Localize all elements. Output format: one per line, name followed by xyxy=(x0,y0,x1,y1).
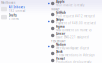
staticText: Production deploy ready xyxy=(56,60,91,63)
staticText: 182 unread xyxy=(8,9,25,13)
staticText: Stripe xyxy=(56,18,64,21)
staticText: Apple xyxy=(56,0,65,3)
staticText: New comment on Home v3 xyxy=(56,28,92,32)
staticText: GitHub xyxy=(56,11,66,14)
staticText: Mailboxes xyxy=(1,1,15,4)
staticText: YESTERDAY xyxy=(51,39,66,43)
staticText: TODAY xyxy=(51,7,60,11)
button[interactable]: GitHub xyxy=(48,11,102,18)
button[interactable]: Linear xyxy=(48,32,102,39)
staticText: 3 new mentions in #design xyxy=(56,53,95,57)
staticText: All Inboxes xyxy=(8,5,24,9)
staticText: Slack xyxy=(56,50,63,53)
staticText: Your invoice is ready xyxy=(56,3,84,7)
staticText: Pull request #412 merged xyxy=(56,14,95,18)
staticText: Drafts xyxy=(8,14,16,17)
button[interactable]: Notion xyxy=(48,43,102,50)
staticText: Weekly workspace digest xyxy=(56,46,89,50)
button[interactable]: Figma xyxy=(48,25,102,32)
staticText: Linear xyxy=(56,32,65,35)
button[interactable]: Stripe xyxy=(48,18,102,25)
button[interactable]: Slack xyxy=(48,50,102,57)
button[interactable]: Vercel xyxy=(48,57,102,63)
staticText: Payment of $48.00 received xyxy=(56,21,96,25)
staticText: Issue ENG-221 assigned xyxy=(56,35,89,39)
staticText: Figma xyxy=(56,25,65,28)
button[interactable]: All Inboxes xyxy=(0,5,40,13)
staticText: 6 items xyxy=(8,17,18,21)
button[interactable]: Apple xyxy=(48,0,102,7)
button[interactable]: Drafts xyxy=(0,14,40,21)
staticText: Vercel xyxy=(56,57,65,60)
staticText: Notion xyxy=(56,43,66,46)
